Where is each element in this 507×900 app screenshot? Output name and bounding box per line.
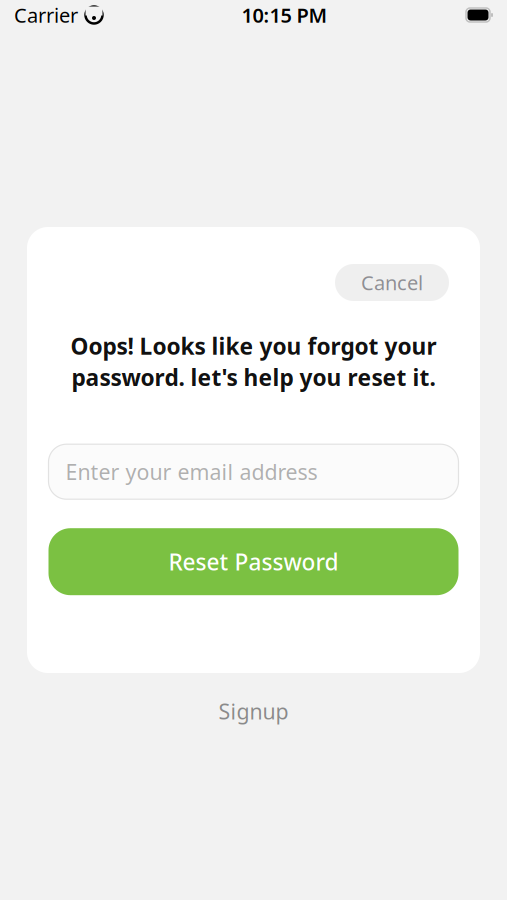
button[interactable]: Cancel bbox=[335, 264, 449, 301]
button[interactable]: Reset Password bbox=[48, 528, 458, 595]
staticText: 10:15 PM bbox=[241, 2, 327, 28]
staticText: password. let's help you reset it. bbox=[71, 362, 435, 392]
staticText: Enter your email address bbox=[65, 457, 317, 486]
staticText: Reset Password bbox=[168, 547, 338, 577]
staticText: Cancel bbox=[361, 269, 423, 296]
button[interactable]: Signup bbox=[200, 689, 306, 733]
staticText: Carrier bbox=[14, 2, 78, 28]
staticText: Oops! Looks like you forgot your bbox=[70, 331, 436, 361]
staticText: Signup bbox=[218, 697, 288, 725]
